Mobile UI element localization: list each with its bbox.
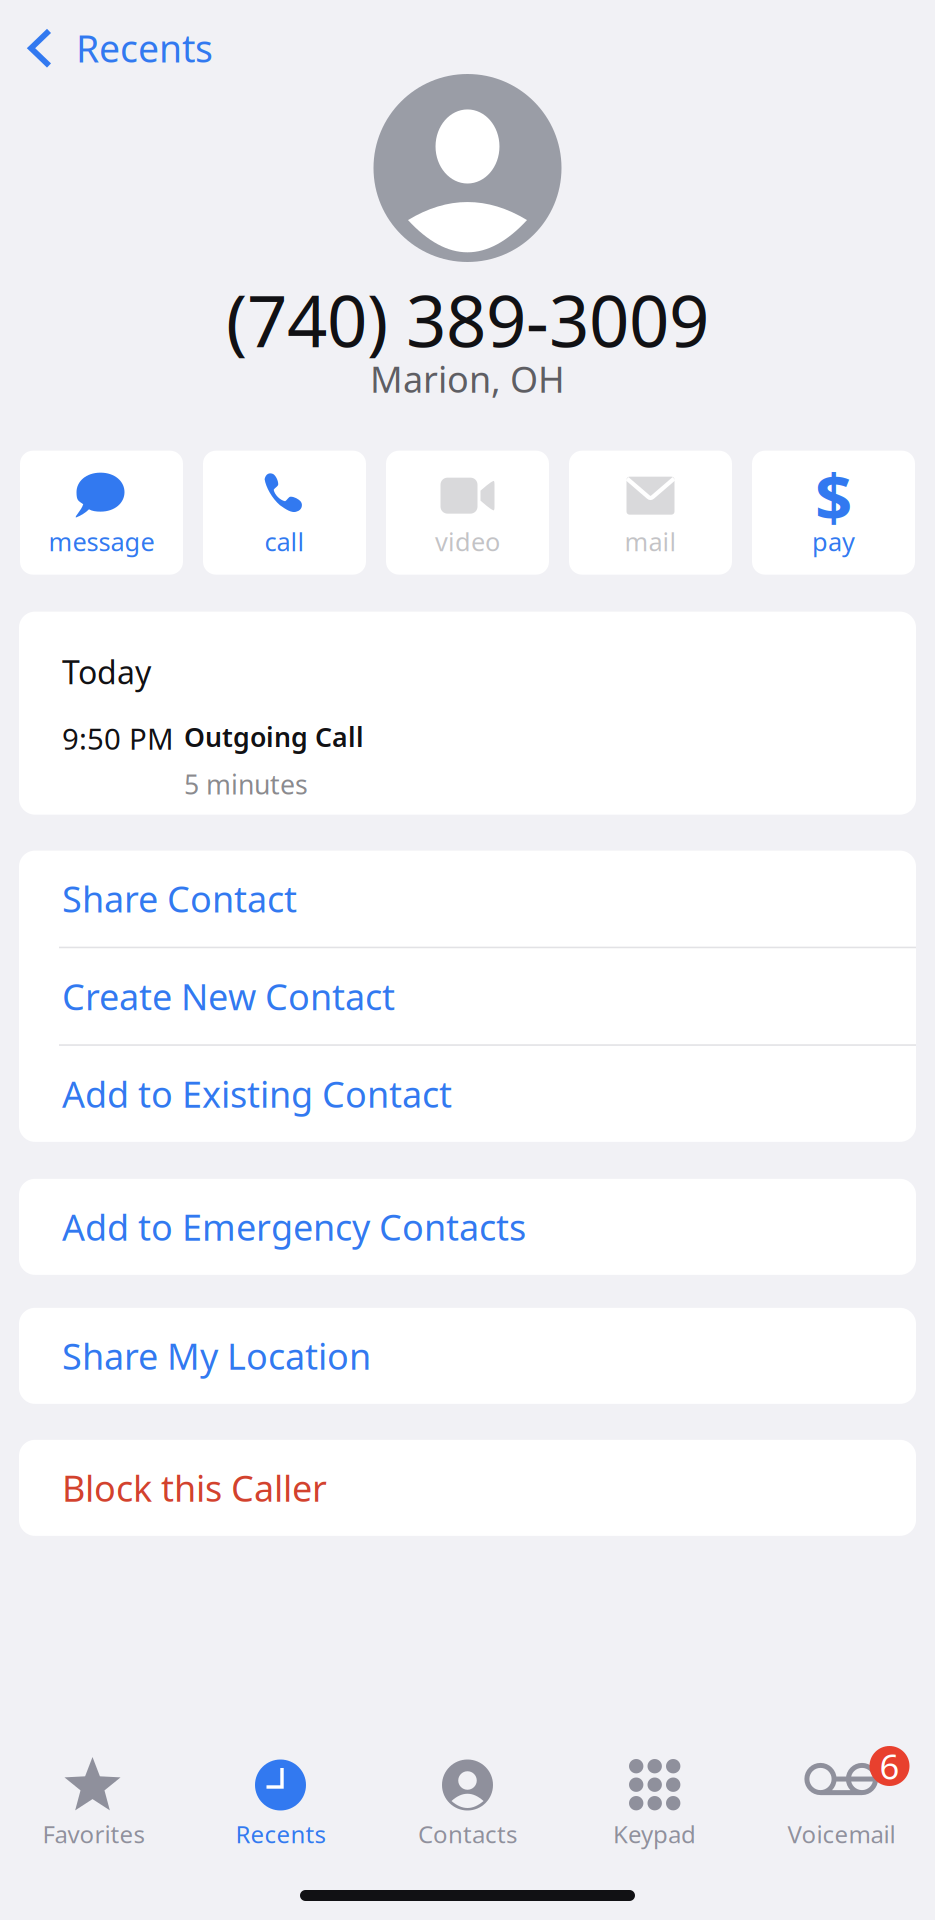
staticText: (740) 389-3009 bbox=[226, 273, 709, 367]
staticText: Share My Location bbox=[62, 1332, 371, 1380]
button[interactable]: Favorites bbox=[0, 1758, 187, 1850]
staticText: call bbox=[264, 525, 304, 558]
staticText: Add to Emergency Contacts bbox=[62, 1203, 526, 1251]
staticText: 5 minutes bbox=[184, 766, 308, 802]
staticText: 9:50 PM bbox=[62, 719, 174, 758]
staticText: Keypad bbox=[613, 1818, 696, 1850]
button[interactable]: Recents bbox=[187, 1758, 374, 1850]
button[interactable]: call bbox=[203, 451, 366, 575]
staticText: mail bbox=[624, 525, 676, 558]
staticText: Today bbox=[62, 650, 151, 693]
staticText: Marion, OH bbox=[370, 355, 565, 403]
button[interactable]: Block this Caller bbox=[19, 1440, 916, 1536]
staticText: pay bbox=[812, 525, 855, 558]
staticText: Outgoing Call bbox=[184, 719, 364, 754]
button[interactable]: Create New Contact bbox=[19, 948, 916, 1044]
button[interactable]: 6 bbox=[748, 1758, 935, 1850]
staticText: message bbox=[48, 525, 154, 558]
button[interactable]: video bbox=[386, 451, 549, 575]
button[interactable]: Add to Emergency Contacts bbox=[19, 1179, 916, 1275]
button[interactable]: $ bbox=[752, 451, 915, 575]
button[interactable]: Contacts bbox=[374, 1758, 561, 1850]
staticText: Create New Contact bbox=[62, 972, 395, 1020]
button[interactable]: Add to Existing Contact bbox=[19, 1046, 916, 1142]
staticText: 6 bbox=[879, 1743, 899, 1789]
staticText: Share Contact bbox=[62, 875, 297, 922]
button[interactable]: Recents bbox=[0, 0, 231, 96]
button[interactable]: Share My Location bbox=[19, 1308, 916, 1404]
staticText: Add to Existing Contact bbox=[62, 1070, 452, 1118]
button[interactable]: message bbox=[20, 451, 183, 575]
staticText: Block this Caller bbox=[62, 1464, 327, 1512]
button[interactable]: mail bbox=[569, 451, 732, 575]
staticText: Favorites bbox=[42, 1818, 144, 1850]
staticText: $ bbox=[815, 452, 852, 539]
staticText: Recents bbox=[235, 1818, 325, 1850]
staticText: Contacts bbox=[418, 1818, 517, 1850]
button[interactable]: Share Contact bbox=[19, 851, 916, 947]
staticText: video bbox=[435, 525, 500, 558]
button[interactable]: Keypad bbox=[561, 1758, 748, 1850]
staticText: Voicemail bbox=[787, 1818, 895, 1850]
staticText: Recents bbox=[76, 23, 213, 73]
